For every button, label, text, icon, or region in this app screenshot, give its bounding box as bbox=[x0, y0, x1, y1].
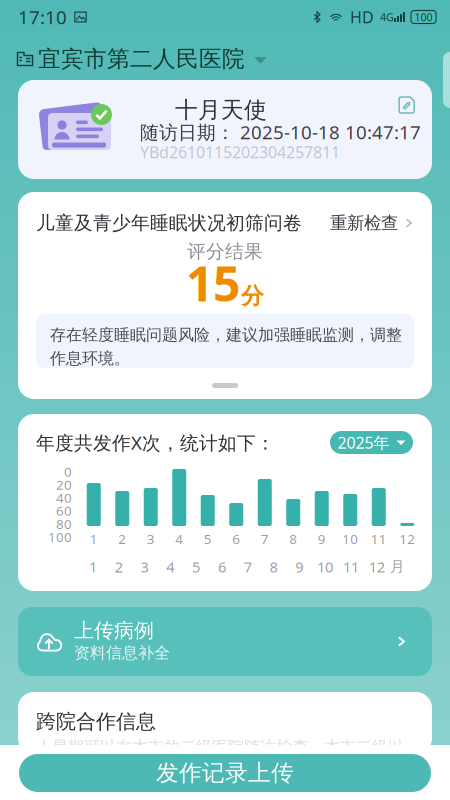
staticText: 10 bbox=[342, 530, 358, 548]
staticText: 11 bbox=[343, 557, 359, 576]
staticText: 存在轻度睡眠问题风险，建议加强睡眠监测，调整作息环境。 bbox=[50, 325, 402, 368]
button[interactable]: 编辑 bbox=[392, 91, 422, 119]
button[interactable]: 重新检查 bbox=[330, 213, 414, 233]
staticText: 4 bbox=[175, 530, 183, 548]
staticText: 6 bbox=[232, 530, 240, 548]
staticText: 4 bbox=[166, 557, 174, 576]
staticText: 上传病例 bbox=[74, 618, 154, 643]
staticText: 80 bbox=[56, 515, 72, 533]
staticText: 5 bbox=[204, 530, 212, 548]
staticText: 100 bbox=[48, 528, 72, 546]
staticText: 2 bbox=[115, 557, 123, 576]
staticText: 3 bbox=[140, 557, 148, 576]
staticText: 20 bbox=[56, 476, 72, 493]
staticText: 8 bbox=[269, 557, 277, 576]
staticText: 17:10 bbox=[18, 5, 67, 29]
staticText: 9 bbox=[295, 557, 303, 576]
staticText: 宜宾市第二人民医院 bbox=[38, 45, 245, 73]
staticText: 分 bbox=[241, 282, 264, 310]
staticText: 15 bbox=[186, 251, 240, 315]
button[interactable]: 宜宾市第二人民医院 bbox=[17, 46, 267, 72]
staticText: 发作记录上传 bbox=[156, 759, 294, 787]
staticText: 随访日期： 2025-10-18 10:47:17 bbox=[140, 120, 421, 144]
staticText: HD bbox=[350, 6, 374, 28]
staticText: 12 bbox=[369, 557, 385, 576]
staticText: 10 bbox=[317, 557, 333, 576]
staticText: 9 bbox=[318, 530, 326, 548]
staticText: 十月天使 bbox=[175, 96, 267, 124]
staticText: 年度共发作X次，统计如下： bbox=[36, 430, 275, 455]
staticText: 40 bbox=[56, 489, 72, 506]
button[interactable]: 发作记录上传 bbox=[19, 754, 431, 792]
staticText: 8 bbox=[289, 530, 297, 548]
staticText: 12 bbox=[399, 530, 415, 548]
staticText: 100 bbox=[414, 10, 432, 24]
staticText: 资料信息补全 bbox=[74, 643, 170, 663]
staticText: 0 bbox=[64, 463, 72, 480]
staticText: 1 bbox=[89, 557, 97, 576]
staticText: 4G bbox=[380, 10, 394, 24]
button[interactable]: 2025年 bbox=[330, 431, 413, 454]
button[interactable]: 上传病例 bbox=[18, 607, 432, 676]
staticText: 评分结果 bbox=[187, 240, 263, 263]
staticText: 2025年 bbox=[337, 432, 389, 453]
staticText: 月 bbox=[390, 558, 405, 576]
staticText: 7 bbox=[244, 557, 252, 576]
staticText: 1 bbox=[90, 530, 98, 548]
staticText: 11 bbox=[371, 530, 387, 548]
staticText: 3 bbox=[147, 530, 155, 548]
staticText: 跨院合作信息 bbox=[36, 709, 156, 734]
staticText: YBd2610115202304257811 bbox=[140, 141, 340, 163]
staticText: 上星期可以在本市的二级医院随访检查，本市二级以上医院 bbox=[36, 737, 404, 777]
staticText: 7 bbox=[261, 530, 269, 548]
staticText: 重新检查 bbox=[330, 212, 398, 234]
staticText: 60 bbox=[56, 502, 72, 519]
staticText: 儿童及青少年睡眠状况初筛问卷 bbox=[36, 211, 302, 234]
staticText: 5 bbox=[192, 557, 200, 576]
staticText: 6 bbox=[218, 557, 226, 576]
staticText: 2 bbox=[118, 530, 126, 548]
